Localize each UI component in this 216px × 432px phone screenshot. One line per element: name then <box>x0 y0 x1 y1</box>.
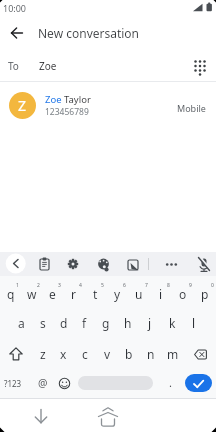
button[interactable]: f <box>74 309 95 337</box>
button[interactable] <box>34 253 56 275</box>
staticText: c <box>82 346 88 362</box>
staticText: 1 <box>16 282 19 289</box>
staticText: d <box>60 315 68 331</box>
button[interactable]: j <box>139 309 161 337</box>
staticText: 2 <box>37 282 40 289</box>
button[interactable] <box>0 16 34 50</box>
button[interactable]: n <box>140 340 162 368</box>
button[interactable]: Z <box>0 82 216 128</box>
button[interactable]: w <box>21 280 42 308</box>
button[interactable]: h <box>117 309 139 337</box>
button[interactable]: d <box>53 309 74 337</box>
staticText: 123456789 <box>45 106 89 118</box>
staticText: w <box>27 286 37 302</box>
button[interactable]: c <box>74 340 96 368</box>
button[interactable]: r <box>63 280 84 308</box>
staticText: s <box>40 315 46 331</box>
button[interactable]: q <box>0 280 21 308</box>
staticText: 6 <box>123 282 126 289</box>
button[interactable]: i <box>150 280 172 308</box>
staticText: o <box>179 286 187 302</box>
button[interactable] <box>93 400 123 430</box>
button[interactable]: v <box>96 340 118 368</box>
staticText: 9 <box>189 282 192 289</box>
staticText: x <box>60 346 67 362</box>
button[interactable]: y <box>106 280 128 308</box>
button[interactable] <box>122 253 144 275</box>
staticText: z <box>40 346 46 362</box>
staticText: 5 <box>101 282 104 289</box>
staticText: To <box>8 59 19 73</box>
button[interactable] <box>5 253 27 275</box>
button[interactable]: u <box>128 280 150 308</box>
staticText: a <box>18 315 25 331</box>
staticText: r <box>71 286 76 302</box>
button[interactable]: t <box>84 280 106 308</box>
button[interactable] <box>0 340 32 368</box>
button[interactable]: To <box>0 50 216 81</box>
button[interactable] <box>185 374 212 392</box>
staticText: 8 <box>167 282 170 289</box>
staticText: 3 <box>58 282 61 289</box>
staticText: f <box>82 315 87 331</box>
staticText: 0 <box>211 282 214 289</box>
button[interactable]: a <box>11 309 32 337</box>
staticText: New conversation <box>38 25 140 41</box>
button[interactable] <box>62 253 84 275</box>
button[interactable]: k <box>161 309 183 337</box>
button[interactable] <box>193 253 215 275</box>
staticText: m <box>167 346 179 362</box>
button[interactable] <box>93 253 115 275</box>
staticText: p <box>201 286 209 302</box>
staticText: q <box>7 286 15 302</box>
button[interactable]: ?123 <box>4 378 22 389</box>
staticText: Zoe <box>39 59 57 73</box>
button[interactable]: b <box>118 340 140 368</box>
staticText: 7 <box>145 282 148 289</box>
staticText: 4 <box>79 282 82 289</box>
staticText: k <box>169 315 176 331</box>
button[interactable] <box>184 340 216 368</box>
button[interactable]: l <box>183 309 205 337</box>
button[interactable]: . <box>169 375 172 390</box>
staticText: 10:00 <box>3 2 27 14</box>
button[interactable] <box>187 53 213 79</box>
button[interactable]: o <box>172 280 194 308</box>
button[interactable] <box>78 376 153 390</box>
button[interactable]: p <box>194 280 216 308</box>
staticText: i <box>159 286 163 302</box>
staticText: j <box>148 315 152 331</box>
staticText: e <box>49 286 56 302</box>
button[interactable]: x <box>53 340 74 368</box>
staticText: Zoe Taylor <box>45 93 91 106</box>
button[interactable]: m <box>162 340 184 368</box>
button[interactable] <box>58 377 71 390</box>
staticText: n <box>147 346 155 362</box>
staticText: b <box>125 346 133 362</box>
staticText: l <box>192 315 196 331</box>
staticText: v <box>104 346 111 362</box>
staticText: y <box>114 286 121 302</box>
staticText: g <box>102 315 110 331</box>
staticText: Z <box>18 96 27 115</box>
button[interactable]: g <box>95 309 117 337</box>
button[interactable]: e <box>42 280 63 308</box>
button[interactable] <box>28 402 54 428</box>
button[interactable]: z <box>32 340 53 368</box>
button[interactable]: @ <box>38 376 48 390</box>
button[interactable] <box>161 253 183 275</box>
staticText: u <box>135 286 143 302</box>
staticText: t <box>93 286 98 302</box>
staticText: h <box>124 315 132 331</box>
staticText: Mobile <box>177 102 206 114</box>
button[interactable]: s <box>32 309 53 337</box>
